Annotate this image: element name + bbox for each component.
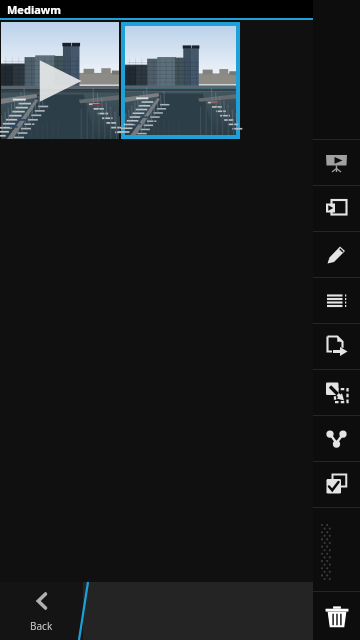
staticText: Mediawm (7, 2, 61, 17)
staticText: Back (30, 619, 53, 633)
button[interactable]: Delete (313, 591, 360, 640)
button[interactable]: Playlist (313, 277, 360, 323)
button[interactable]: Slideshow (313, 139, 360, 185)
button[interactable]: Play clip 1 (1, 22, 119, 139)
button[interactable]: Back (0, 582, 83, 640)
button[interactable]: Share (313, 415, 360, 461)
button[interactable]: Clip 2 selected (125, 26, 236, 135)
button[interactable]: Select all (313, 461, 360, 507)
button[interactable]: Picture in picture (313, 185, 360, 231)
button[interactable]: Transform (313, 369, 360, 415)
button[interactable]: Export (313, 323, 360, 369)
button[interactable]: Edit (313, 231, 360, 277)
